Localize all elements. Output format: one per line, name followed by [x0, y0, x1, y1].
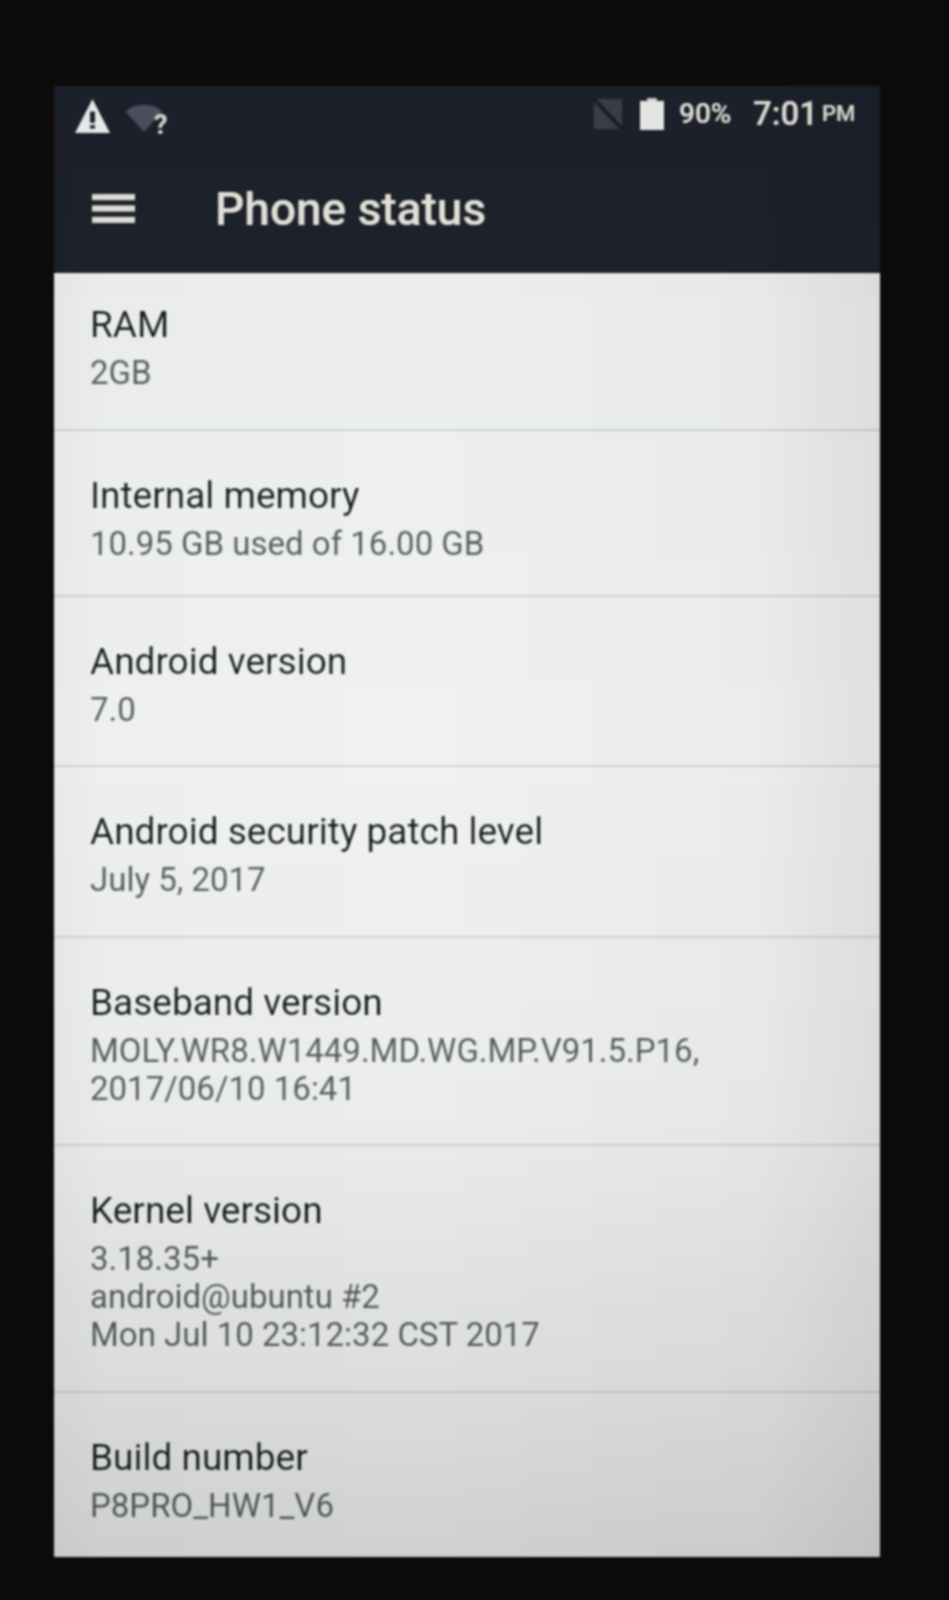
staticText: 7:01 [753, 94, 818, 133]
staticText: 90% [679, 97, 732, 130]
staticText: July 5, 2017 [90, 860, 266, 899]
staticText: Internal memory [90, 474, 360, 517]
staticText: Baseband version [90, 981, 383, 1024]
button[interactable]: Android version [54, 596, 880, 766]
button[interactable]: RAM [54, 273, 880, 430]
staticText: Android version [90, 640, 348, 683]
staticText: 7.0 [90, 690, 136, 729]
staticText: RAM [90, 303, 170, 346]
staticText: Kernel version [90, 1189, 323, 1232]
staticText: 10.95 GB used of 16.00 GB [90, 524, 485, 563]
staticText: PM [822, 101, 856, 127]
staticText: Build number [90, 1436, 308, 1479]
staticText: 2GB [90, 353, 152, 392]
staticText: Phone status [215, 182, 487, 236]
staticText: MOLY.WR8.W1449.MD.WG.MP.V91.5.P16, 2017/… [90, 1031, 700, 1108]
button[interactable]: Internal memory [54, 430, 880, 596]
staticText: ? [154, 109, 168, 139]
staticText: P8PRO_HW1_V6 [90, 1486, 334, 1525]
button[interactable]: Open navigation drawer [62, 150, 164, 266]
staticText: 3.18.35+ android@ubuntu #2 Mon Jul 10 23… [90, 1239, 540, 1354]
staticText: Android security patch level [90, 810, 544, 853]
button[interactable]: Build number [54, 1392, 880, 1547]
button[interactable]: Android security patch level [54, 766, 880, 937]
button[interactable]: Kernel version [54, 1145, 880, 1392]
button[interactable]: Baseband version [54, 937, 880, 1145]
